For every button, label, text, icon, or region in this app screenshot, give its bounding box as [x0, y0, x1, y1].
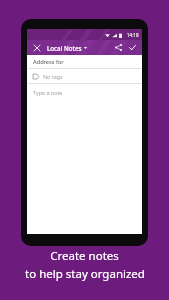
button[interactable]: No tags	[27, 69, 142, 83]
staticText: Address for	[33, 58, 64, 66]
staticText: Local Notes	[47, 44, 82, 52]
button[interactable]: Local Notes	[47, 44, 87, 52]
staticText: Create notes	[50, 248, 119, 264]
button[interactable]: Share	[113, 42, 124, 53]
button[interactable]: Address for	[27, 55, 142, 68]
button[interactable]: Save	[127, 42, 138, 53]
staticText: to help stay organized	[25, 266, 145, 282]
button[interactable]: Close	[31, 42, 42, 53]
staticText: Type a note	[33, 89, 63, 96]
staticText: No tags	[43, 73, 63, 80]
staticText: 14:18	[127, 32, 139, 38]
